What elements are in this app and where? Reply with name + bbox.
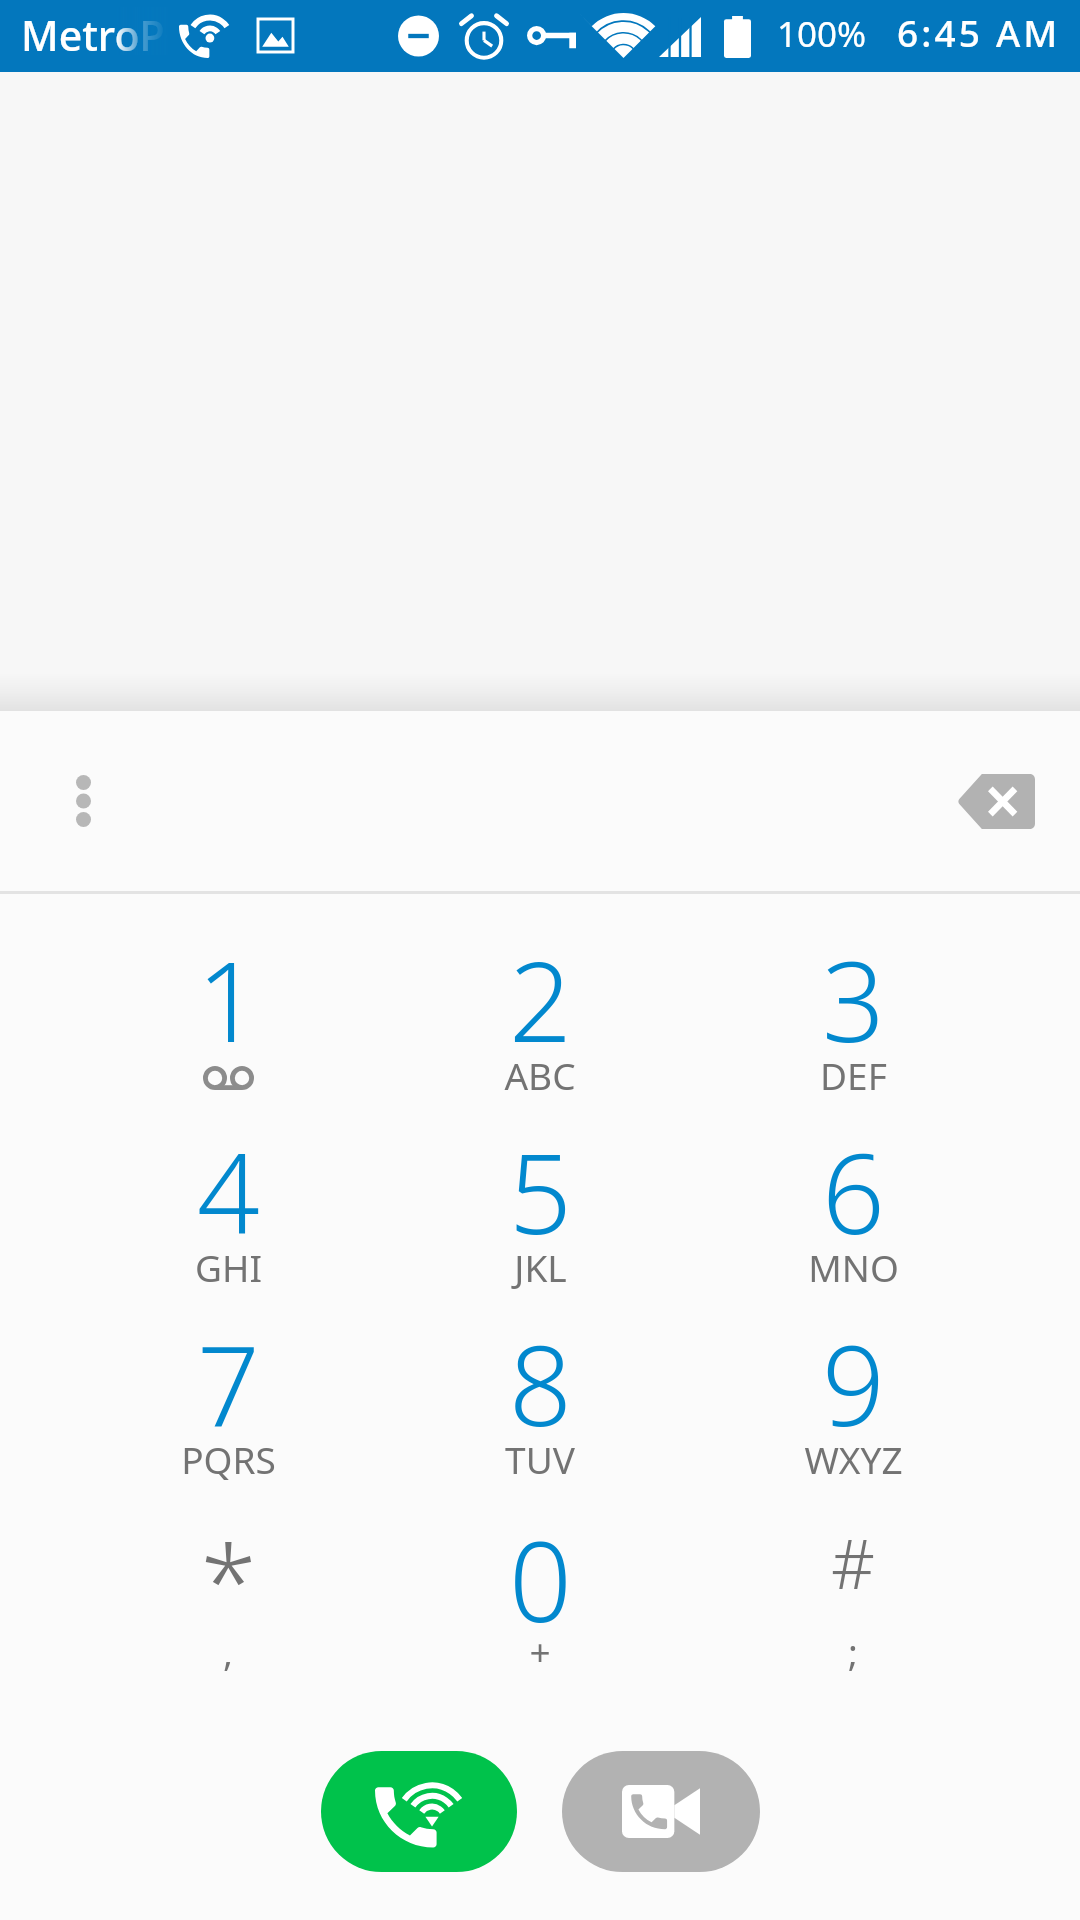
staticText: PQRS xyxy=(181,1434,276,1484)
button[interactable]: 7 xyxy=(72,1276,384,1468)
staticText: 100% xyxy=(777,10,867,58)
button[interactable]: 6 xyxy=(697,1084,1009,1276)
button[interactable]: More options xyxy=(43,761,123,841)
button[interactable]: 5 xyxy=(384,1084,696,1276)
staticText: ; xyxy=(848,1626,858,1676)
button[interactable]: 4 xyxy=(72,1084,384,1276)
staticText: 6 xyxy=(822,1116,885,1266)
staticText: 1 xyxy=(197,924,260,1074)
staticText: * xyxy=(200,1510,257,1649)
staticText: TUV xyxy=(505,1434,575,1484)
staticText: MNO xyxy=(808,1242,899,1292)
button[interactable]: Wi-Fi call xyxy=(321,1751,517,1872)
button[interactable]: Video call xyxy=(562,1751,760,1872)
staticText: # xyxy=(831,1516,875,1609)
staticText: 4 xyxy=(197,1116,260,1266)
button[interactable]: 2 xyxy=(384,892,696,1084)
button[interactable]: # xyxy=(697,1468,1009,1660)
staticText: 9 xyxy=(822,1308,885,1458)
staticText: 3 xyxy=(822,924,885,1074)
staticText: WXYZ xyxy=(804,1434,903,1484)
staticText: 2 xyxy=(509,924,572,1074)
staticText: GHI xyxy=(195,1242,262,1292)
staticText: 5 xyxy=(509,1116,572,1266)
button[interactable]: 9 xyxy=(697,1276,1009,1468)
staticText: DEF xyxy=(820,1050,887,1100)
button[interactable]: 3 xyxy=(697,892,1009,1084)
staticText: MetroPCS xyxy=(21,7,168,55)
staticText: ABC xyxy=(504,1050,576,1100)
staticText: 7 xyxy=(197,1308,260,1458)
button[interactable]: 0 xyxy=(384,1468,696,1660)
staticText: JKL xyxy=(514,1242,567,1292)
button[interactable]: Backspace xyxy=(936,750,1056,852)
staticText: 8 xyxy=(509,1308,572,1458)
staticText: 6:45 AM xyxy=(897,7,1061,57)
staticText: 0 xyxy=(509,1504,572,1654)
button[interactable]: 1 xyxy=(72,892,384,1084)
staticText: + xyxy=(529,1626,551,1676)
staticText: , xyxy=(223,1626,233,1676)
button[interactable]: * xyxy=(72,1468,384,1660)
button[interactable]: 8 xyxy=(384,1276,696,1468)
